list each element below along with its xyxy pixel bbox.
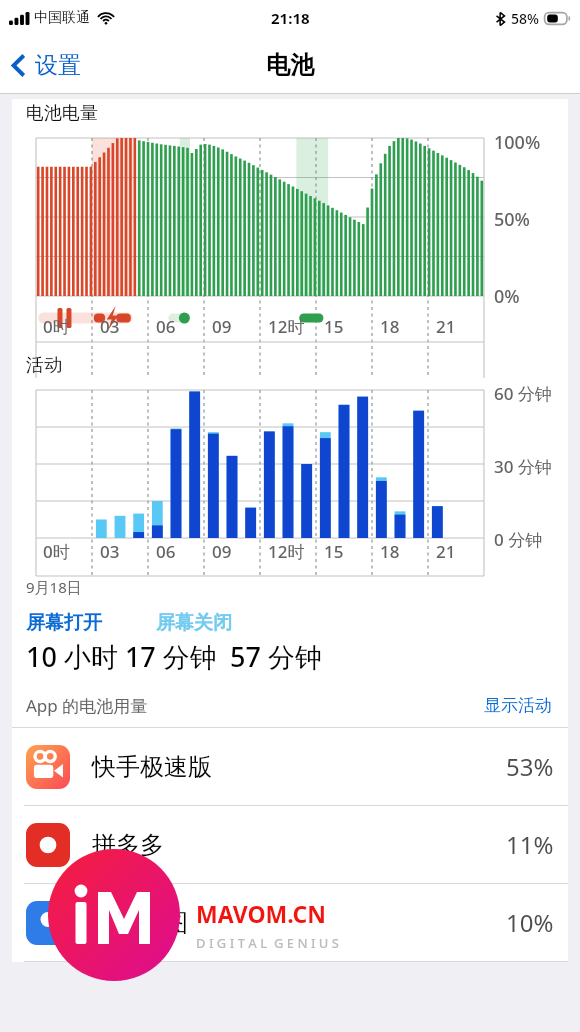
staticText: 11% (506, 828, 554, 861)
staticText: 53% (506, 750, 554, 783)
button[interactable]: App icon (12, 806, 568, 883)
staticText: 显示活动 (484, 695, 552, 716)
staticText: 高德地图 (92, 908, 188, 938)
staticText: 9月18日 (26, 577, 82, 597)
staticText: 0 分钟 (494, 528, 543, 551)
staticText: 03 (100, 315, 120, 338)
staticText: 18 (380, 315, 400, 338)
staticText: 09 (212, 540, 232, 563)
staticText: 09 (212, 315, 232, 338)
staticText: 屏幕打开 (26, 611, 156, 635)
staticText: 电池电量 (26, 102, 98, 125)
staticText: 15 (324, 315, 344, 338)
staticText: App 的电池用量 (26, 694, 148, 717)
staticText: 58% (511, 9, 539, 28)
staticText: 活动 (26, 354, 62, 377)
staticText: 21 (436, 540, 456, 563)
staticText: 21 (436, 315, 456, 338)
staticText: 0% (494, 284, 520, 309)
staticText: 12时 (268, 315, 305, 338)
staticText: MAVOM.CN (196, 898, 327, 929)
button[interactable]: App icon (12, 728, 568, 805)
button[interactable]: App icon (12, 884, 568, 961)
staticText: 06 (156, 540, 176, 563)
other: App icon (26, 901, 70, 945)
staticText: 18 (380, 540, 400, 563)
staticText: 30 分钟 (494, 455, 552, 478)
staticText: 100% (494, 130, 541, 155)
button[interactable]: 设置 (0, 43, 95, 88)
staticText: 10% (506, 906, 554, 939)
staticText: 0时 (43, 315, 70, 338)
button[interactable]: 显示活动 (482, 693, 554, 718)
staticText: 06 (156, 315, 176, 338)
staticText: 15 (324, 540, 344, 563)
staticText: 57 分钟 (230, 638, 322, 675)
staticText: 21:18 (271, 8, 310, 28)
staticText: 60 分钟 (494, 382, 552, 405)
staticText: D I G I T A L G E N I U S (196, 934, 339, 952)
staticText: 拼多多 (92, 830, 164, 860)
staticText: 设置 (35, 51, 81, 80)
staticText: 电池 (266, 50, 314, 80)
staticText: 03 (100, 540, 120, 563)
staticText: 屏幕关闭 (156, 611, 232, 635)
staticText: 快手极速版 (92, 752, 212, 782)
staticText: 中国联通 (34, 9, 90, 27)
staticText: 10 小时 17 分钟 (26, 638, 217, 675)
other: App icon (26, 745, 70, 789)
staticText: 50% (494, 207, 530, 232)
staticText: 0时 (43, 540, 70, 563)
other: App icon (26, 823, 70, 867)
staticText: 12时 (268, 540, 305, 563)
